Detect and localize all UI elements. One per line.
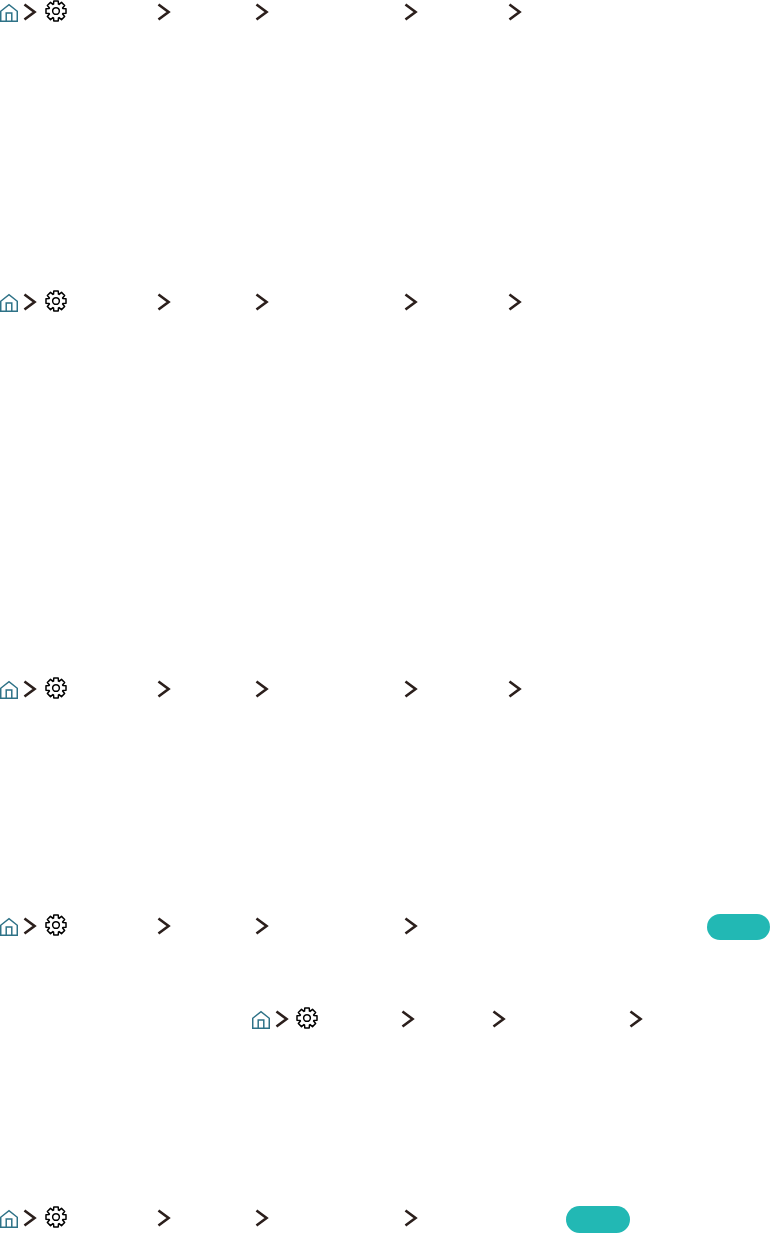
other: Settings [45,914,67,936]
other: Settings [45,1206,67,1228]
other: Home [0,681,18,699]
button[interactable]: Settings [296,1007,318,1029]
other: Home [0,294,18,312]
other: Home [0,4,18,22]
button[interactable]: Home [0,918,18,936]
button[interactable]: Home [252,1011,270,1029]
other: Settings [296,1007,318,1029]
other: Home [0,1210,18,1228]
button[interactable]: Home [0,681,18,699]
button[interactable]: Settings [45,290,67,312]
button[interactable]: Settings [45,677,67,699]
other: Settings [45,0,67,22]
button[interactable]: Home [0,294,18,312]
button[interactable]: Home [0,1210,18,1228]
button[interactable]: Settings [45,1206,67,1228]
button[interactable]: Open [566,1206,630,1233]
other: Home [252,1011,270,1029]
button[interactable]: Open [707,914,770,940]
button[interactable]: Settings [45,0,67,22]
button[interactable]: Home [0,4,18,22]
other: Home [0,918,18,936]
other: Settings [45,290,67,312]
other: Settings [45,677,67,699]
button[interactable]: Settings [45,914,67,936]
